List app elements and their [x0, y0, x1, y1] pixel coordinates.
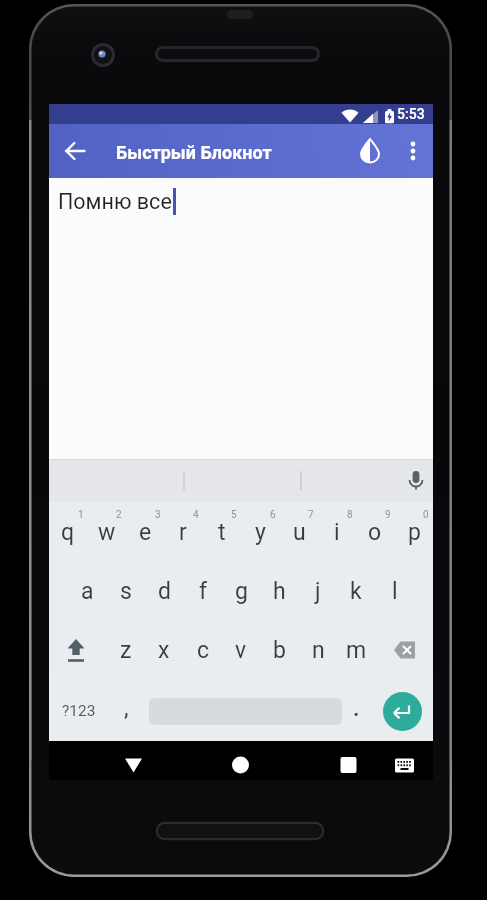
button[interactable] — [55, 131, 95, 171]
button[interactable]: w — [88, 503, 126, 561]
button[interactable]: Помню все — [49, 178, 433, 459]
button[interactable]: ?123 — [49, 682, 109, 740]
staticText: n — [312, 637, 325, 664]
staticText: 3 — [155, 509, 161, 521]
button[interactable]: i — [318, 503, 356, 561]
staticText: 5:53 — [397, 106, 425, 122]
staticText: 7 — [308, 509, 314, 521]
button[interactable]: b — [260, 621, 298, 679]
staticText: k — [350, 578, 362, 605]
button[interactable] — [383, 692, 422, 731]
staticText: 0 — [423, 509, 429, 521]
staticText: f — [199, 578, 207, 605]
button[interactable] — [393, 131, 433, 171]
staticText: 8 — [347, 509, 353, 521]
button[interactable]: p — [395, 503, 433, 561]
staticText: b — [273, 637, 286, 664]
button[interactable]: t — [203, 503, 241, 561]
staticText: w — [98, 519, 116, 546]
button[interactable]: g — [222, 562, 260, 620]
staticText: j — [315, 578, 321, 605]
staticText: i — [334, 519, 340, 546]
staticText: t — [218, 519, 226, 546]
button[interactable] — [113, 745, 153, 784]
staticText: , — [124, 695, 129, 722]
button[interactable]: v — [222, 621, 260, 679]
button[interactable]: e — [126, 503, 164, 561]
button[interactable] — [350, 131, 390, 171]
staticText: Быстрый Блокнот — [116, 142, 272, 163]
staticText: p — [408, 519, 421, 546]
staticText: 9 — [385, 509, 391, 521]
staticText: 6 — [270, 509, 276, 521]
button[interactable] — [49, 621, 106, 679]
button[interactable]: z — [107, 621, 145, 679]
staticText: ?123 — [62, 702, 96, 720]
staticText: 1 — [78, 509, 84, 521]
staticText: c — [197, 637, 210, 664]
staticText: y — [255, 519, 266, 546]
button[interactable]: j — [299, 562, 337, 620]
staticText: h — [273, 578, 286, 605]
staticText: m — [346, 637, 367, 664]
button[interactable]: k — [337, 562, 375, 620]
staticText: u — [293, 519, 306, 546]
staticText: g — [235, 578, 248, 605]
staticText: e — [139, 519, 152, 546]
button[interactable] — [220, 745, 260, 784]
staticText: d — [158, 578, 171, 605]
button[interactable] — [376, 621, 433, 679]
button[interactable]: a — [68, 562, 106, 620]
staticText: 5 — [231, 509, 237, 521]
staticText: . — [353, 695, 360, 722]
button[interactable]: u — [280, 503, 318, 561]
button[interactable]: n — [299, 621, 337, 679]
staticText: r — [179, 519, 187, 546]
button[interactable] — [384, 745, 424, 784]
button[interactable]: c — [184, 621, 222, 679]
staticText: 2 — [116, 509, 122, 521]
button[interactable]: , — [107, 679, 145, 737]
staticText: q — [61, 519, 75, 546]
button[interactable]: m — [337, 621, 375, 679]
button[interactable]: f — [184, 562, 222, 620]
button[interactable] — [396, 460, 436, 500]
staticText: x — [158, 637, 170, 664]
button[interactable]: s — [107, 562, 145, 620]
button[interactable]: r — [164, 503, 202, 561]
staticText: v — [235, 637, 247, 664]
staticText: Помню все — [58, 189, 172, 214]
staticText: s — [120, 578, 132, 605]
button[interactable]: y — [241, 503, 279, 561]
button[interactable]: d — [145, 562, 183, 620]
button[interactable]: q — [49, 503, 87, 561]
button[interactable]: o — [356, 503, 394, 561]
staticText: o — [368, 519, 382, 546]
button[interactable]: l — [376, 562, 414, 620]
staticText: l — [392, 578, 398, 605]
button[interactable]: . — [337, 679, 375, 737]
staticText: a — [81, 578, 94, 605]
staticText: z — [120, 637, 132, 664]
staticText: 4 — [193, 509, 199, 521]
button[interactable]: h — [260, 562, 298, 620]
button[interactable] — [328, 745, 368, 784]
button[interactable]: x — [145, 621, 183, 679]
